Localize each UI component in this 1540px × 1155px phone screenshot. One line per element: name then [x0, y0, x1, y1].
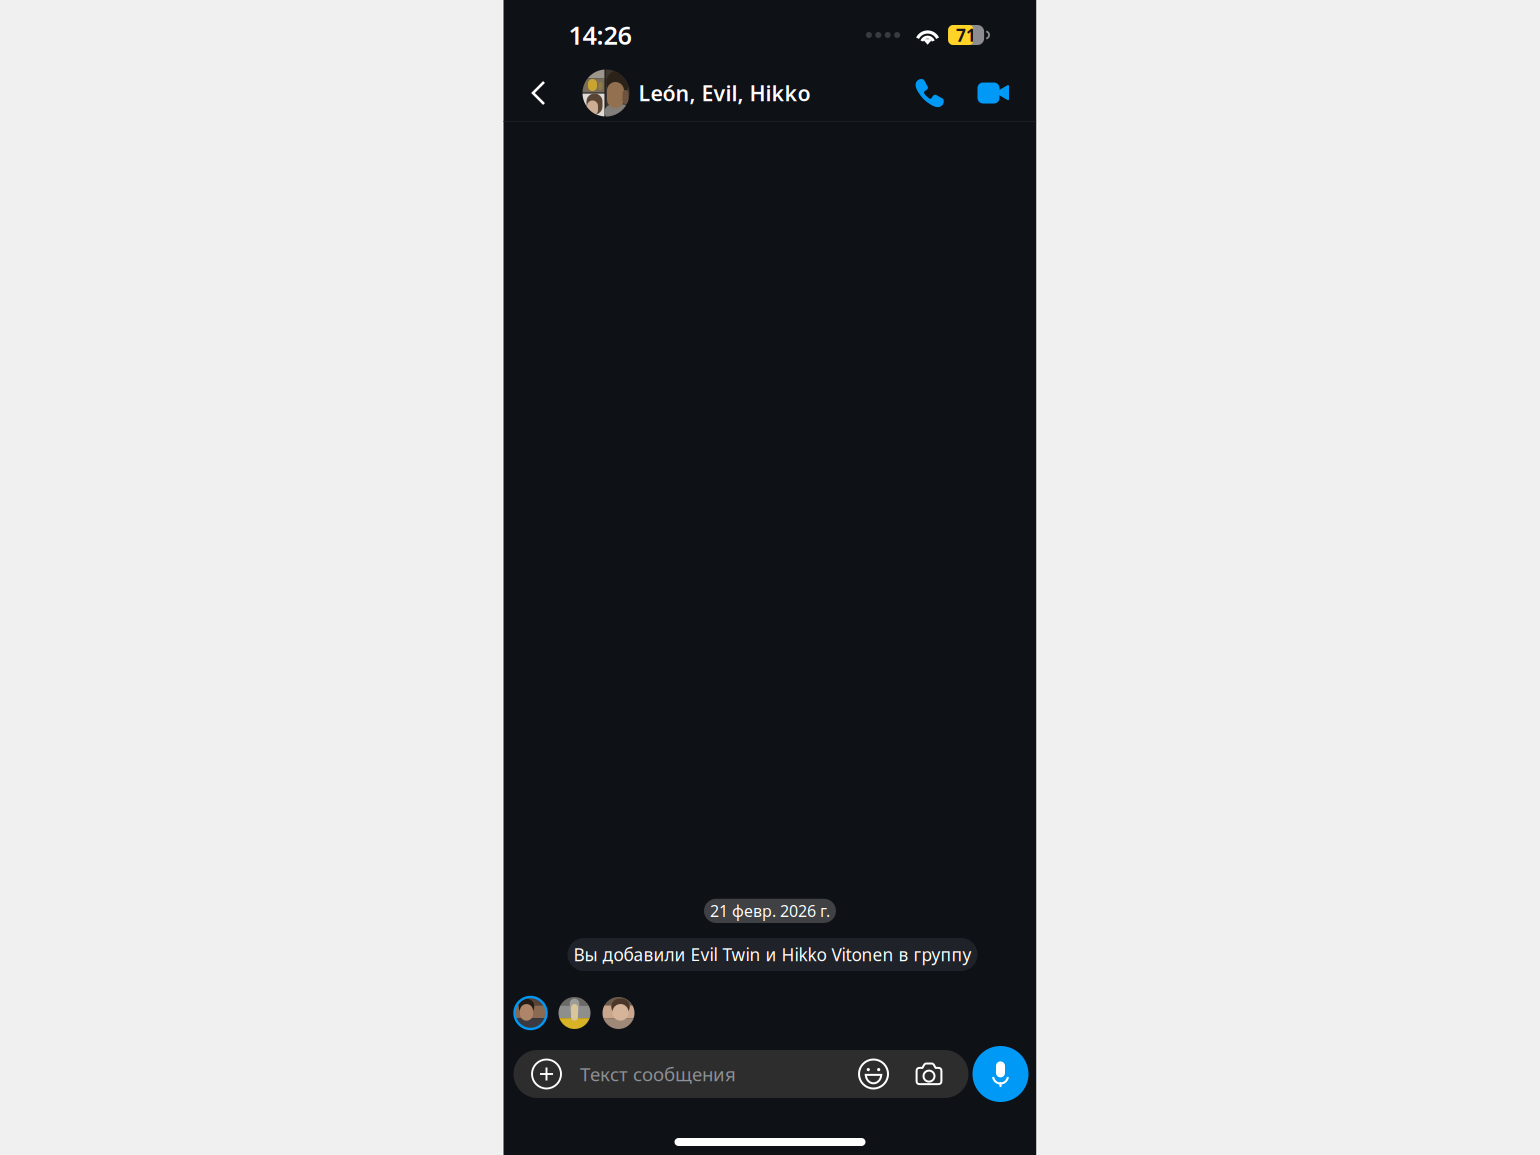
- button[interactable]: Video call: [971, 64, 1015, 121]
- button[interactable]: Текст сообщения: [580, 1050, 853, 1098]
- button[interactable]: Attach: [527, 1050, 566, 1098]
- button[interactable]: León, Evil, Hikko: [582, 64, 810, 121]
- button[interactable]: Back: [517, 64, 559, 121]
- button[interactable]: Camera: [908, 1050, 950, 1098]
- button[interactable]: Record voice message: [972, 1046, 1028, 1102]
- staticText: 21 февр. 2026 г.: [710, 900, 830, 921]
- button[interactable]: Stickers: [853, 1050, 894, 1098]
- staticText: León, Evil, Hikko: [638, 79, 810, 107]
- staticText: Текст сообщения: [580, 1062, 736, 1086]
- staticText: Вы добавили Evil Twin и Hikko Vitonen в …: [573, 943, 971, 966]
- button[interactable]: Audio call: [907, 64, 951, 121]
- staticText: 71: [956, 23, 976, 46]
- staticText: 14:26: [568, 18, 631, 52]
